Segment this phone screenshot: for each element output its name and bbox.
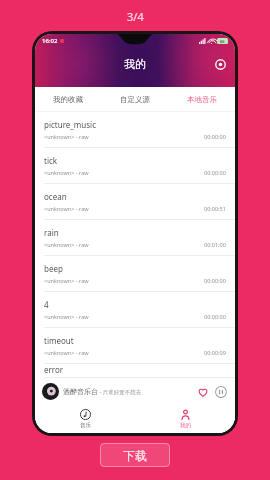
button[interactable]: rain: [35, 220, 235, 256]
staticText: 00:00:00: [204, 169, 226, 176]
staticText: <unknown> - raw: [44, 349, 89, 356]
staticText: <unknown> - raw: [44, 313, 89, 320]
staticText: 下载: [123, 448, 147, 463]
staticText: 自定义源: [120, 95, 150, 104]
staticText: 4: [44, 299, 49, 310]
staticText: <unknown> - raw: [44, 205, 89, 212]
staticText: 00:00:00: [204, 133, 226, 140]
staticText: 00:00:51: [204, 205, 226, 212]
staticText: 00:00:00: [204, 313, 226, 320]
staticText: 酒醉音乐台: [63, 387, 98, 396]
button[interactable]: tick: [35, 148, 235, 184]
staticText: 16:02: [42, 37, 58, 45]
button[interactable]: beep: [35, 256, 235, 292]
staticText: timeout: [44, 335, 74, 346]
button[interactable]: timeout: [35, 328, 235, 364]
staticText: <unknown> - raw: [44, 241, 89, 248]
staticText: 音乐: [80, 422, 91, 429]
staticText: - 只谁好爱不想去: [98, 388, 142, 396]
button[interactable]: 我的: [135, 405, 235, 433]
button[interactable]: Favorite: [195, 384, 210, 399]
button[interactable]: 4: [35, 292, 235, 328]
staticText: error: [44, 364, 64, 375]
button[interactable]: 自定义源: [101, 87, 168, 111]
staticText: 66: [220, 39, 225, 44]
staticText: tick: [44, 155, 58, 166]
staticText: rain: [44, 227, 59, 238]
staticText: <unknown> - raw: [44, 133, 89, 140]
staticText: picture_music: [44, 119, 97, 130]
staticText: 我的: [180, 422, 191, 429]
button[interactable]: 下载: [100, 443, 170, 467]
staticText: 00:01:00: [204, 241, 226, 248]
staticText: 本地音乐: [187, 95, 217, 104]
staticText: beep: [44, 263, 63, 274]
staticText: ocean: [44, 191, 67, 202]
staticText: 我的收藏: [53, 95, 83, 104]
button[interactable]: Pause: [214, 385, 228, 399]
button[interactable]: 本地音乐: [168, 87, 235, 111]
button[interactable]: 我的收藏: [35, 87, 101, 111]
staticText: 00:00:00: [204, 277, 226, 284]
button[interactable]: error: [35, 364, 235, 378]
button[interactable]: Settings: [212, 56, 228, 72]
staticText: 我的: [124, 57, 146, 71]
button[interactable]: picture_music: [35, 112, 235, 148]
staticText: 3/4: [127, 9, 144, 24]
button[interactable]: 音乐: [35, 405, 135, 433]
staticText: <unknown> - raw: [44, 277, 89, 284]
button[interactable]: ocean: [35, 184, 235, 220]
staticText: <unknown> - raw: [44, 169, 89, 176]
button[interactable]: 酒醉音乐台: [35, 378, 235, 405]
staticText: 00:00:09: [204, 349, 226, 356]
